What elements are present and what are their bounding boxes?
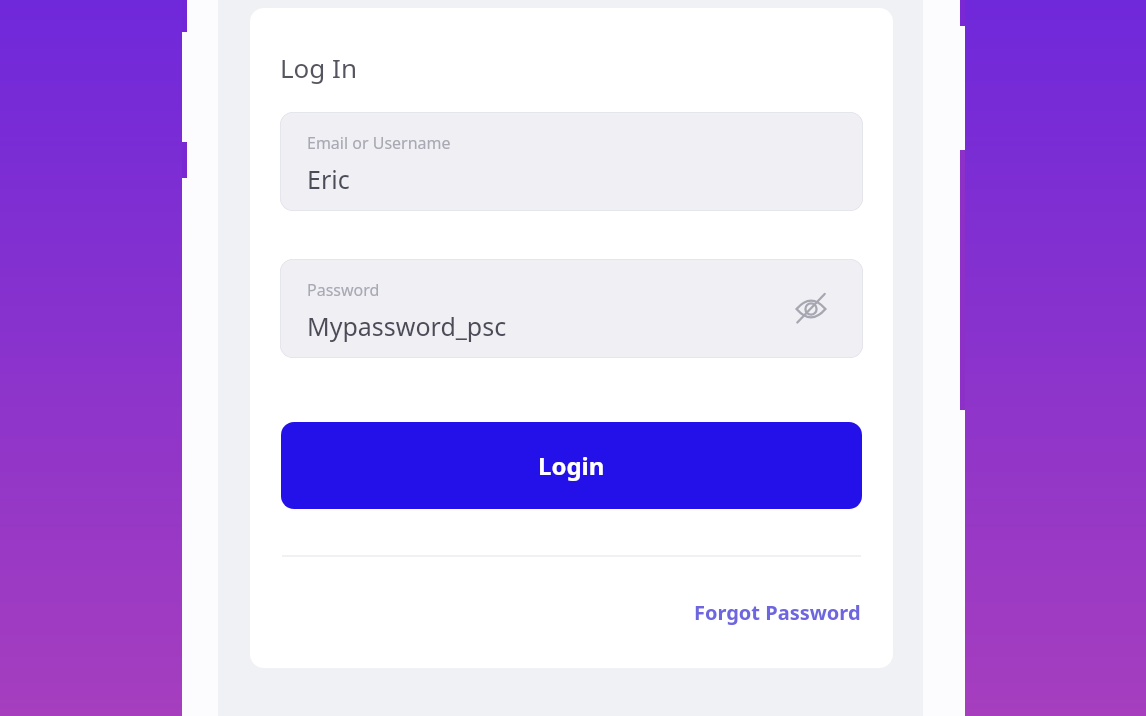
- staticText: Forgot Password: [694, 599, 861, 626]
- staticText: Login: [538, 449, 605, 482]
- button[interactable]: Email or Username: [280, 112, 863, 211]
- staticText: Log In: [280, 50, 357, 85]
- button[interactable]: Login: [281, 422, 862, 509]
- staticText: Eric: [307, 162, 350, 196]
- button[interactable]: Hide password: [789, 287, 833, 331]
- button[interactable]: Password: [280, 259, 863, 358]
- staticText: Email or Username: [307, 132, 451, 154]
- staticText: Password: [307, 279, 380, 301]
- button[interactable]: Forgot Password: [690, 595, 865, 630]
- staticText: Mypassword_psc: [307, 309, 507, 343]
